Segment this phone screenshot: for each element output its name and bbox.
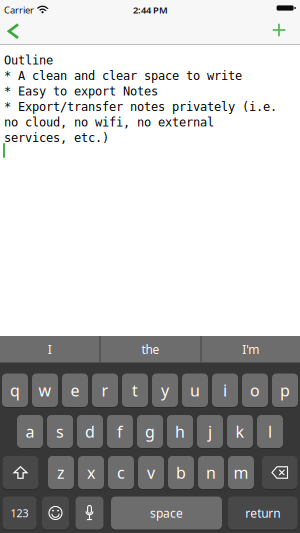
button[interactable]: o <box>242 373 268 407</box>
staticText: no cloud, no wifi, no external <box>4 116 214 129</box>
button[interactable]: m <box>228 456 254 489</box>
staticText: * Export/transfer notes privately (i.e. <box>4 100 277 114</box>
button[interactable]: c <box>108 456 134 489</box>
staticText: s <box>56 421 64 442</box>
staticText: * A clean and clear space to write <box>4 69 242 83</box>
staticText: e <box>70 380 79 401</box>
staticText: services, etc.) <box>4 131 109 145</box>
staticText: g <box>145 421 155 442</box>
button[interactable]: f <box>107 415 133 448</box>
staticText: the <box>141 341 159 357</box>
staticText: I'm <box>242 341 259 357</box>
staticText: y <box>161 380 169 401</box>
staticText: v <box>147 462 155 483</box>
button[interactable]: u <box>182 373 208 407</box>
staticText: 2:44 PM <box>133 4 168 16</box>
button[interactable]: Dictate <box>75 496 103 529</box>
button[interactable]: Emoji <box>42 496 69 529</box>
button[interactable]: Back <box>2 19 25 43</box>
button[interactable]: r <box>92 373 118 407</box>
staticText: d <box>85 421 95 442</box>
button[interactable]: n <box>198 456 224 489</box>
staticText: x <box>87 462 95 483</box>
button[interactable]: g <box>137 415 163 448</box>
button[interactable]: w <box>32 373 58 407</box>
staticText: l <box>268 421 272 442</box>
button[interactable]: Delete <box>262 456 297 489</box>
staticText: space <box>150 505 183 521</box>
button[interactable]: j <box>197 415 223 448</box>
staticText: I <box>48 341 52 357</box>
button[interactable]: x <box>78 456 104 489</box>
button[interactable]: t <box>122 373 148 407</box>
button[interactable]: s <box>47 415 73 448</box>
staticText: i <box>223 380 227 401</box>
button[interactable]: y <box>152 373 178 407</box>
staticText: u <box>190 380 200 401</box>
button[interactable]: b <box>168 456 194 489</box>
button[interactable]: h <box>167 415 193 448</box>
button[interactable]: Shift <box>2 456 38 489</box>
staticText: j <box>208 421 212 442</box>
staticText: p <box>280 380 290 401</box>
staticText: 123 <box>10 506 28 520</box>
button[interactable]: i <box>212 373 238 407</box>
button[interactable]: Numbers <box>2 496 36 529</box>
button[interactable]: z <box>48 456 74 489</box>
button[interactable]: d <box>77 415 103 448</box>
button[interactable]: Add note <box>266 19 292 41</box>
button[interactable]: l <box>257 415 283 448</box>
staticText: Outline <box>4 53 53 67</box>
button[interactable]: return <box>228 496 297 529</box>
staticText: t <box>132 380 138 401</box>
staticText: o <box>250 380 260 401</box>
button[interactable]: I'm <box>201 336 300 362</box>
button[interactable]: a <box>17 415 43 448</box>
button[interactable]: e <box>62 373 88 407</box>
button[interactable]: I <box>0 336 99 362</box>
staticText: q <box>10 380 20 401</box>
staticText: return <box>245 505 280 521</box>
staticText: m <box>233 462 248 483</box>
staticText: a <box>25 421 34 442</box>
button[interactable]: space <box>111 496 222 529</box>
staticText: Carrier <box>4 4 34 16</box>
staticText: b <box>176 462 186 483</box>
staticText: k <box>235 421 244 442</box>
staticText: c <box>117 462 125 483</box>
staticText: w <box>38 380 51 401</box>
staticText: * Easy to export Notes <box>4 84 158 98</box>
staticText: h <box>175 421 185 442</box>
button[interactable]: the <box>100 336 200 362</box>
button[interactable]: p <box>272 373 298 407</box>
button[interactable]: v <box>138 456 164 489</box>
button[interactable]: k <box>227 415 253 448</box>
staticText: n <box>206 462 216 483</box>
staticText: r <box>101 380 108 401</box>
button[interactable]: q <box>2 373 28 407</box>
staticText: z <box>57 462 65 483</box>
staticText: f <box>117 421 123 442</box>
